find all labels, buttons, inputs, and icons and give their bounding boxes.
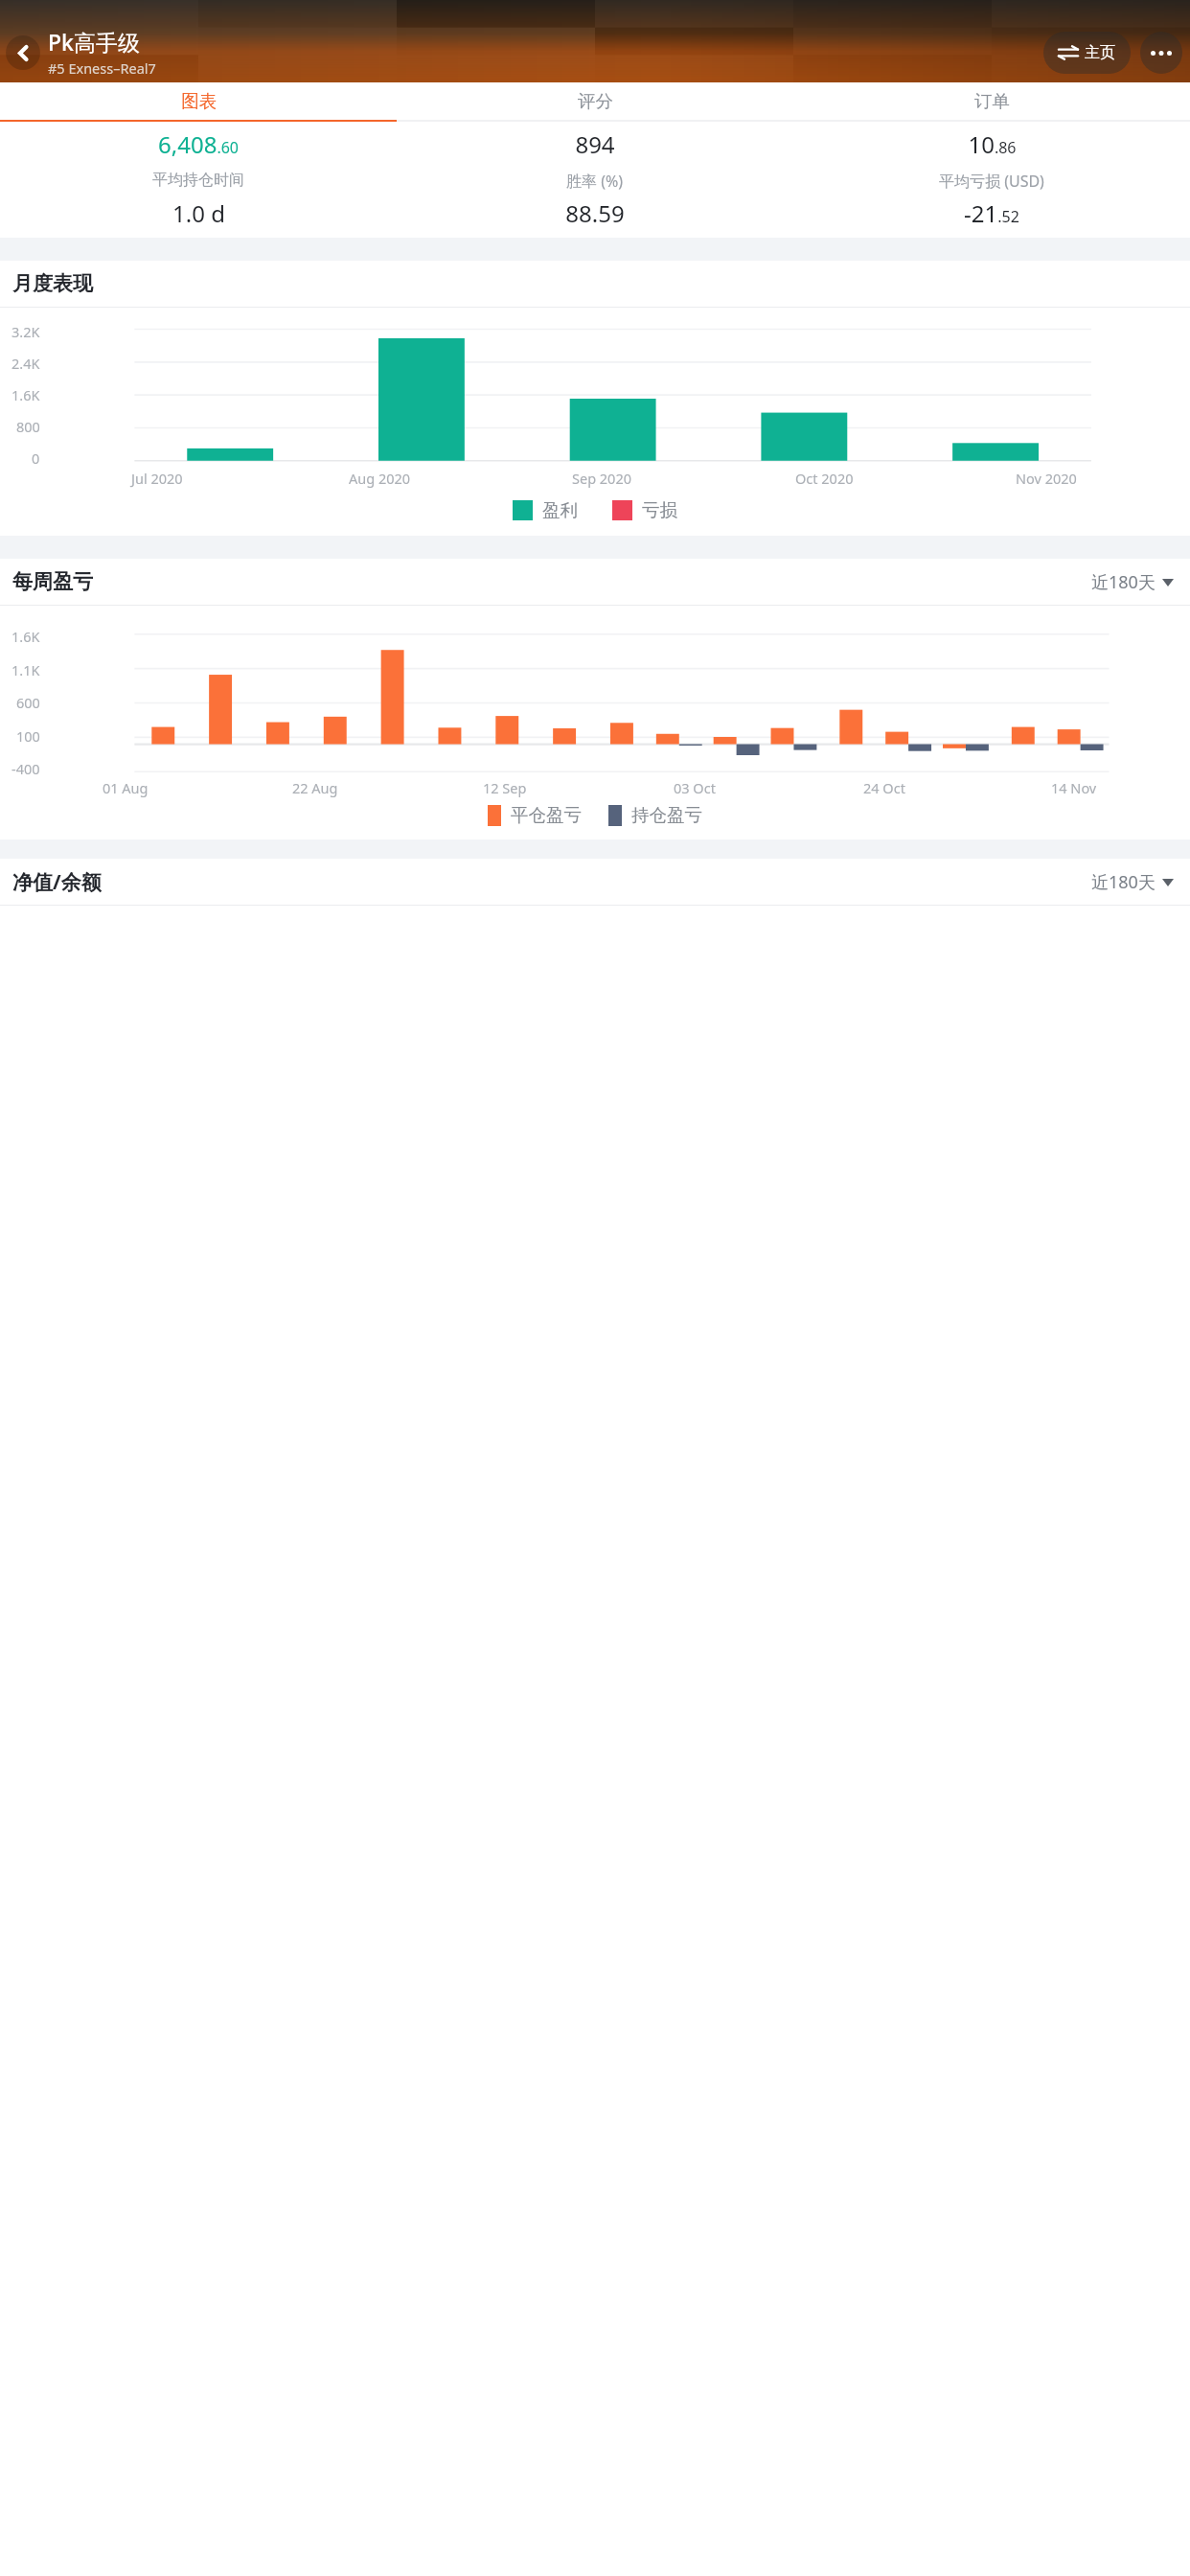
staticText: 88.59: [565, 197, 625, 229]
staticText: 亏损: [642, 499, 677, 521]
staticText: 0: [32, 448, 40, 468]
staticText: 近180天: [1091, 870, 1156, 894]
staticText: -21.52: [964, 197, 1019, 229]
button[interactable]: 持仓盈亏: [608, 804, 702, 826]
staticText: 2.4K: [11, 354, 40, 373]
staticText: 894: [575, 128, 615, 160]
staticText: Aug 2020: [349, 469, 411, 488]
staticText: 平仓盈亏: [511, 804, 582, 826]
staticText: 主页: [1085, 43, 1115, 62]
staticText: 评分: [578, 90, 613, 112]
button[interactable]: 盈利: [513, 499, 578, 521]
staticText: 1.0 d: [172, 197, 225, 229]
staticText: 净值/余额: [12, 868, 102, 896]
staticText: 1.6K: [11, 385, 40, 404]
staticText: 12 Sep: [483, 778, 527, 797]
button[interactable]: Back: [6, 35, 40, 70]
staticText: 1.1K: [11, 660, 40, 679]
button[interactable]: 主页: [1043, 32, 1131, 74]
staticText: 14 Nov: [1051, 778, 1097, 797]
button[interactable]: More options: [1140, 32, 1182, 74]
staticText: 10.86: [968, 128, 1017, 160]
button[interactable]: 近180天: [1087, 564, 1178, 600]
staticText: Sep 2020: [572, 469, 632, 488]
staticText: 100: [16, 726, 40, 746]
staticText: #5 Exness–Real7: [48, 58, 156, 78]
staticText: 1.6K: [11, 627, 40, 646]
button[interactable]: 评分: [397, 82, 793, 120]
button[interactable]: 图表: [0, 82, 397, 120]
button[interactable]: 平仓盈亏: [488, 804, 582, 826]
staticText: 胜率 (%): [566, 171, 624, 192]
staticText: 24 Oct: [863, 778, 905, 797]
staticText: -400: [11, 759, 40, 778]
staticText: 01 Aug: [103, 778, 149, 797]
staticText: 6,408.60: [158, 128, 239, 160]
button[interactable]: 近180天: [1087, 864, 1178, 900]
staticText: Nov 2020: [1016, 469, 1077, 488]
staticText: Jul 2020: [131, 469, 183, 488]
staticText: 03 Oct: [674, 778, 716, 797]
staticText: 盈利: [542, 499, 578, 521]
staticText: 近180天: [1091, 570, 1156, 594]
staticText: 平均亏损 (USD): [939, 171, 1044, 192]
staticText: 月度表现: [12, 271, 93, 296]
staticText: 图表: [181, 90, 217, 112]
staticText: 22 Aug: [292, 778, 338, 797]
staticText: 平均持仓时间: [152, 171, 244, 190]
staticText: 800: [16, 417, 40, 436]
staticText: 600: [16, 693, 40, 712]
staticText: 订单: [974, 90, 1010, 112]
staticText: 每周盈亏: [12, 569, 93, 594]
staticText: Pk高手级: [48, 27, 140, 57]
staticText: Oct 2020: [795, 469, 854, 488]
button[interactable]: 亏损: [612, 499, 677, 521]
staticText: 3.2K: [11, 322, 40, 341]
button[interactable]: 订单: [793, 82, 1190, 120]
staticText: 持仓盈亏: [631, 804, 702, 826]
